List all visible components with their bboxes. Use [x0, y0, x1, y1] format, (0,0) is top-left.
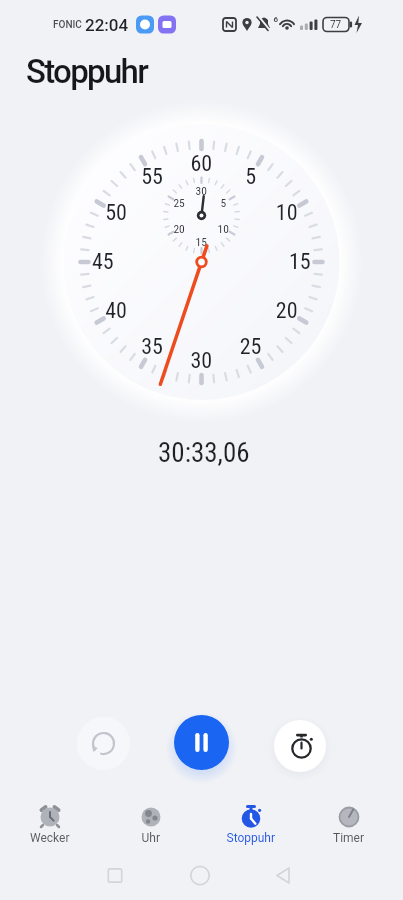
button[interactable]: [274, 720, 326, 772]
button[interactable]: [0, 793, 100, 850]
button[interactable]: [201, 793, 301, 850]
button[interactable]: [85, 854, 145, 896]
button[interactable]: [170, 854, 230, 896]
button[interactable]: [253, 854, 313, 896]
button[interactable]: [77, 717, 130, 770]
button[interactable]: [101, 793, 201, 850]
button[interactable]: [174, 715, 229, 770]
button[interactable]: [299, 793, 399, 850]
